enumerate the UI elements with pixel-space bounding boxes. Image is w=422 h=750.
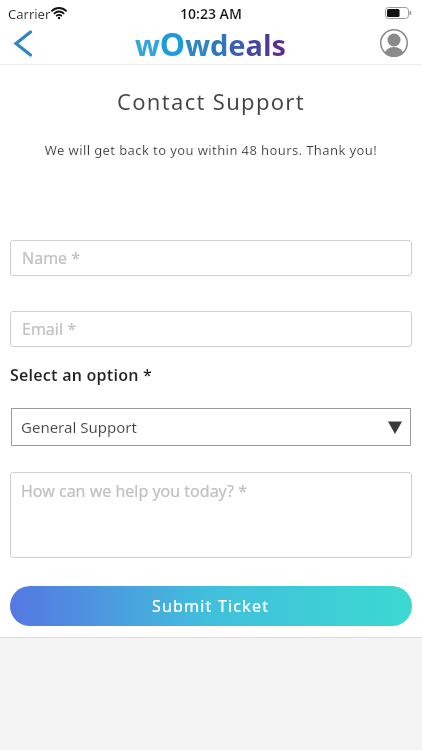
staticText: 10:23 AM (0, 4, 422, 23)
staticText: We will get back to you within 48 hours.… (0, 141, 422, 159)
button[interactable]: Email * (10, 311, 412, 347)
staticText: wOwdeals (135, 22, 287, 62)
button[interactable]: Submit Ticket (10, 586, 412, 626)
button[interactable]: General Support (11, 408, 411, 446)
staticText: General Support (21, 417, 137, 437)
staticText: Carrier (8, 5, 51, 23)
staticText: Email * (22, 318, 77, 340)
staticText: Name * (22, 247, 81, 269)
staticText: Select an option * (10, 364, 152, 386)
staticText: Contact Support (0, 86, 422, 116)
staticText: How can we help you today? * (21, 480, 248, 502)
button[interactable]: Name * (10, 240, 412, 276)
button[interactable]: How can we help you today? * (10, 472, 412, 558)
button[interactable] (380, 29, 408, 57)
button[interactable] (6, 26, 42, 62)
staticText: Submit Ticket (152, 595, 270, 617)
